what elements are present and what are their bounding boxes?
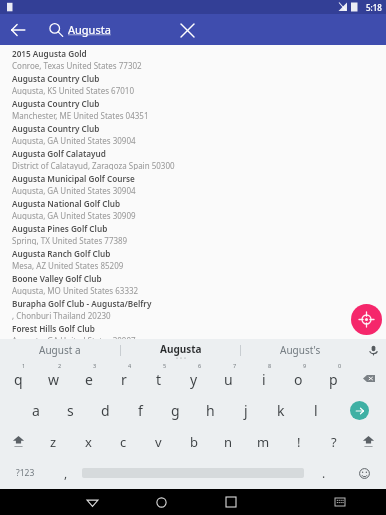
staticText: Boone Valley Golf Club: [12, 273, 102, 284]
staticText: Augusta, GA United States 30907: [12, 335, 136, 339]
staticText: x: [85, 433, 92, 451]
button[interactable]: 7: [211, 361, 246, 394]
staticText: Augusta, GA United States 30909: [12, 210, 136, 220]
button[interactable]: 9: [281, 361, 316, 394]
button[interactable]: 6: [176, 361, 211, 394]
staticText: p: [329, 370, 338, 389]
button[interactable]: Augusta: [121, 339, 240, 361]
button[interactable]: Augusta Pines Golf Club: [0, 220, 386, 245]
button[interactable]: My location: [351, 304, 382, 335]
button[interactable]: 8: [246, 361, 281, 394]
button[interactable]: Shift: [351, 426, 386, 457]
button[interactable]: Clear search: [172, 15, 202, 45]
button[interactable]: August a: [0, 339, 120, 361]
button[interactable]: j: [228, 394, 263, 426]
staticText: r: [121, 370, 127, 389]
staticText: 3: [93, 362, 97, 369]
button[interactable]: Augusta Country Club: [0, 95, 386, 120]
button[interactable]: Recent apps: [196, 489, 265, 515]
button[interactable]: Keyboard: [311, 489, 369, 515]
staticText: 5: [163, 362, 167, 369]
button[interactable]: f: [123, 394, 158, 426]
staticText: d: [101, 401, 110, 420]
button[interactable]: Augusta Ranch Golf Club: [0, 245, 386, 270]
button[interactable]: v: [141, 426, 176, 457]
staticText: Augusta Ranch Golf Club: [12, 248, 111, 259]
button[interactable]: 5: [141, 361, 176, 394]
staticText: k: [277, 401, 285, 420]
button[interactable]: 1: [0, 361, 36, 394]
button[interactable]: Search: [333, 394, 386, 426]
button[interactable]: 2: [36, 361, 71, 394]
staticText: 1: [22, 362, 26, 369]
staticText: Augusta: [160, 342, 202, 356]
button[interactable]: .: [304, 457, 343, 489]
staticText: s: [67, 401, 74, 420]
button[interactable]: n: [211, 426, 246, 457]
button[interactable]: August's: [241, 339, 360, 361]
button[interactable]: Forest Hills Golf Club: [0, 320, 386, 339]
staticText: 8: [268, 362, 272, 369]
button[interactable]: 0: [316, 361, 351, 394]
button[interactable]: x: [71, 426, 106, 457]
staticText: n: [224, 433, 233, 451]
button[interactable]: Emoji: [343, 457, 386, 489]
button[interactable]: Augusta Country Club: [0, 120, 386, 145]
staticText: Augusta Country Club: [12, 98, 100, 109]
button[interactable]: z: [36, 426, 71, 457]
button[interactable]: d: [88, 394, 123, 426]
staticText: 6: [198, 362, 202, 369]
staticText: Augusta Pines Golf Club: [12, 223, 108, 234]
button[interactable]: Augusta Country Club: [0, 70, 386, 95]
staticText: o: [294, 370, 303, 389]
staticText: j: [244, 401, 248, 420]
staticText: ?: [331, 433, 337, 451]
staticText: u: [224, 370, 233, 389]
staticText: Conroe, Texas United States 77302: [12, 60, 142, 70]
staticText: Augusta, GA United States 30904: [12, 185, 136, 195]
staticText: 9: [303, 362, 307, 369]
button[interactable]: a: [18, 394, 53, 426]
staticText: Augusta: [68, 22, 111, 37]
staticText: Augusta National Golf Club: [12, 198, 121, 209]
button[interactable]: ?123: [0, 457, 50, 489]
button[interactable]: Voice input: [360, 339, 386, 361]
button[interactable]: b: [176, 426, 211, 457]
button[interactable]: Augusta Municipal Golf Course: [0, 170, 386, 195]
button[interactable]: 2015 Augusta Gold: [0, 45, 386, 70]
button[interactable]: s: [53, 394, 88, 426]
button[interactable]: Augusta Golf Calatayud: [0, 145, 386, 170]
button[interactable]: ,: [50, 457, 82, 489]
button[interactable]: k: [263, 394, 298, 426]
button[interactable]: h: [193, 394, 228, 426]
button[interactable]: c: [106, 426, 141, 457]
button[interactable]: m: [246, 426, 281, 457]
button[interactable]: Home: [127, 489, 196, 515]
button[interactable]: Burapha Golf Club - Augusta/Belfry: [0, 295, 386, 320]
button[interactable]: !: [281, 426, 316, 457]
staticText: 4: [128, 362, 132, 369]
staticText: ?123: [16, 467, 35, 479]
button[interactable]: Back: [58, 489, 127, 515]
button[interactable]: Back: [0, 14, 36, 45]
staticText: f: [138, 401, 143, 420]
button[interactable]: l: [298, 394, 333, 426]
button[interactable]: Backspace: [351, 361, 386, 394]
staticText: c: [120, 433, 127, 451]
button[interactable]: Boone Valley Golf Club: [0, 270, 386, 295]
button[interactable]: ?: [316, 426, 351, 457]
staticText: Burapha Golf Club - Augusta/Belfry: [12, 298, 152, 309]
staticText: District of Calatayud, Zaragoza Spain 50…: [12, 160, 175, 170]
staticText: 5:18: [366, 2, 382, 13]
staticText: t: [156, 370, 162, 389]
button[interactable]: Augusta National Golf Club: [0, 195, 386, 220]
staticText: Augusta Country Club: [12, 73, 100, 84]
staticText: g: [171, 401, 180, 420]
button[interactable]: 3: [71, 361, 106, 394]
staticText: z: [50, 433, 57, 451]
button[interactable]: g: [158, 394, 193, 426]
button[interactable]: 4: [106, 361, 141, 394]
staticText: 2: [58, 362, 62, 369]
button[interactable]: Shift: [0, 426, 36, 457]
